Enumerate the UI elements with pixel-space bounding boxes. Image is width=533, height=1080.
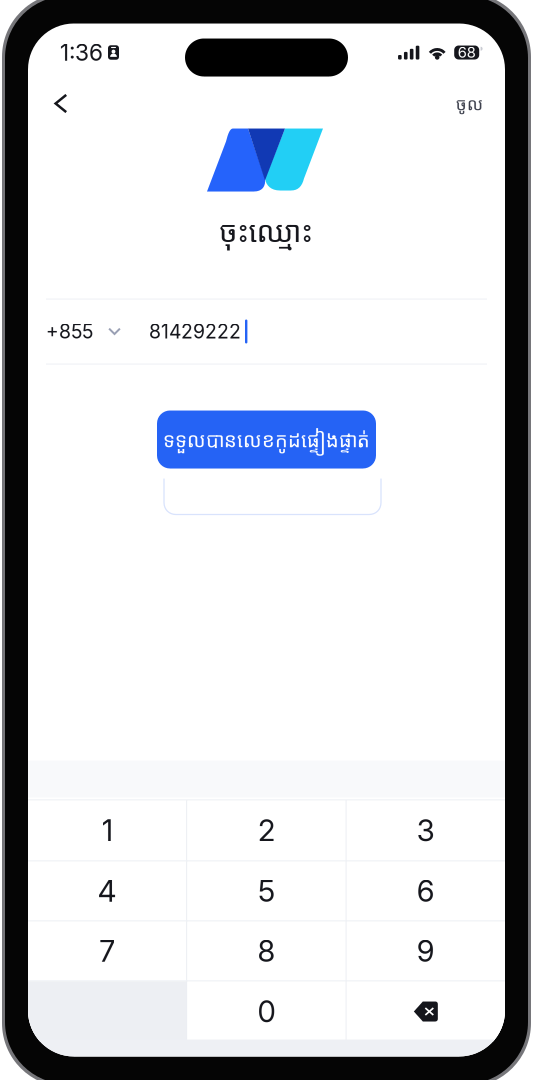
staticText: 9 xyxy=(417,933,435,969)
staticText: 8 xyxy=(257,933,275,969)
button[interactable]: 4 xyxy=(28,861,186,920)
staticText: 81429222 xyxy=(149,320,241,343)
button[interactable]: 5 xyxy=(187,861,346,920)
staticText: ទទួលបានលេខកូដផ្ទៀងផ្ទាត់ xyxy=(163,426,370,453)
staticText: ចុះឈ្មោះ xyxy=(219,210,312,250)
staticText: 5 xyxy=(258,873,275,909)
button[interactable]: ទទួលបានលេខកូដផ្ទៀងផ្ទាត់ xyxy=(157,410,376,468)
staticText: 4 xyxy=(98,873,117,909)
staticText: 6 xyxy=(417,873,435,909)
button[interactable]: 8 xyxy=(187,921,346,980)
staticText: 68 xyxy=(458,44,476,61)
staticText: 2 xyxy=(258,813,275,848)
button[interactable]: ចូល xyxy=(428,81,483,125)
button[interactable]: 2 xyxy=(187,800,346,860)
staticText: 0 xyxy=(257,994,275,1029)
staticText: +855 xyxy=(46,320,93,343)
button[interactable]: 6 xyxy=(347,861,505,920)
staticText: ចូល xyxy=(456,92,483,115)
staticText: 3 xyxy=(417,813,435,848)
button[interactable]: Country code +855 xyxy=(46,299,121,363)
button[interactable]: 7 xyxy=(28,921,186,980)
button[interactable]: Back xyxy=(54,81,98,125)
button[interactable]: 9 xyxy=(347,921,505,980)
button[interactable]: Delete xyxy=(347,981,505,1041)
staticText: 7 xyxy=(99,933,115,969)
button[interactable]: 1 xyxy=(28,800,186,860)
button[interactable]: 0 xyxy=(187,981,346,1041)
button[interactable]: 3 xyxy=(347,800,505,860)
staticText: 1 xyxy=(102,813,113,848)
staticText: 1:36 xyxy=(60,39,103,66)
